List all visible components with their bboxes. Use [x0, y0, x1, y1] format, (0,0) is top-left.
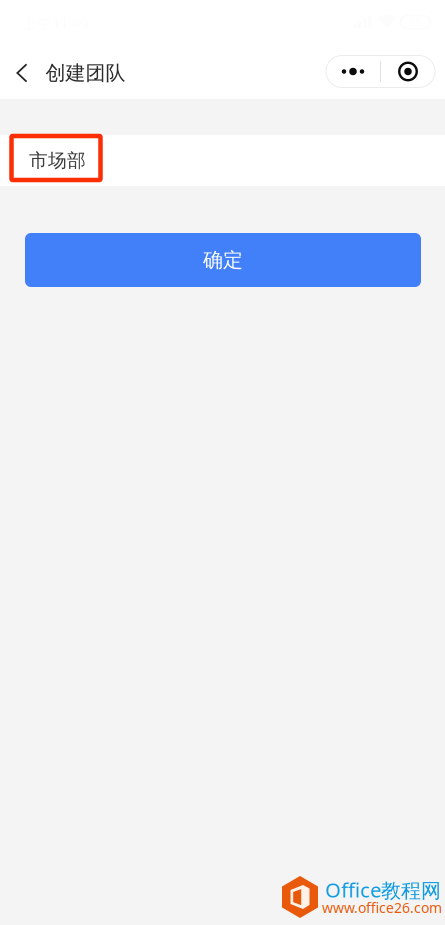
staticText: 创建团队 — [45, 60, 125, 86]
button[interactable]: 市场部 — [0, 135, 445, 186]
staticText: 市场部 — [29, 149, 86, 172]
staticText: Office教程网 — [325, 876, 441, 903]
button[interactable]: 确定 — [25, 233, 421, 287]
staticText: www.office26.com — [322, 898, 442, 917]
button[interactable]: More options — [326, 55, 380, 87]
button[interactable]: Close mini program — [381, 55, 435, 87]
staticText: 确定 — [203, 247, 243, 273]
button[interactable]: Back — [7, 44, 37, 99]
